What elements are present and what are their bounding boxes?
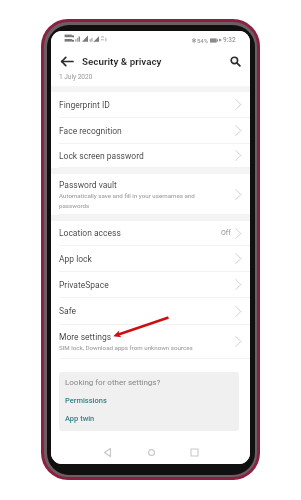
button[interactable]: App lock [51, 246, 250, 272]
staticText: Lock screen password [59, 151, 144, 161]
staticText: Face recognition [59, 126, 122, 136]
staticText: Looking for other settings? [65, 378, 161, 387]
staticText: Safe [59, 306, 77, 316]
staticText: 54% [197, 37, 209, 44]
button[interactable]: Password vault [51, 174, 250, 215]
button[interactable]: More settings [51, 325, 250, 359]
staticText: Permissions [65, 396, 107, 405]
button[interactable]: Safe [51, 298, 250, 325]
staticText: Location access [59, 228, 121, 238]
staticText: App twin [65, 414, 95, 423]
staticText: PrivateSpace [59, 280, 109, 290]
button[interactable]: PrivateSpace [51, 272, 250, 298]
staticText: App lock [59, 254, 92, 264]
button[interactable]: Face recognition [51, 118, 250, 144]
staticText: 9:32 [223, 36, 236, 44]
staticText: SIM lock, Download apps from unknown sou… [59, 344, 193, 351]
button[interactable]: Back [57, 55, 76, 68]
staticText: Password vault [59, 180, 117, 190]
staticText: Security & privacy [82, 56, 162, 67]
button[interactable]: Location access [51, 221, 250, 246]
button[interactable]: App twin [65, 414, 95, 423]
staticText: Off [221, 229, 231, 237]
staticText: More settings [59, 332, 112, 342]
button[interactable]: Permissions [65, 396, 107, 405]
button[interactable]: Fingerprint ID [51, 92, 250, 118]
button[interactable]: Recents [185, 443, 204, 462]
button[interactable]: Home [142, 443, 161, 462]
staticText: Automatically save and fill in your user… [59, 192, 195, 209]
button[interactable]: Lock screen password [51, 144, 250, 168]
button[interactable]: Back [98, 443, 117, 462]
staticText: Fingerprint ID [59, 100, 110, 110]
button[interactable]: Search [226, 52, 244, 70]
staticText: 1 July 2020 [59, 73, 93, 81]
